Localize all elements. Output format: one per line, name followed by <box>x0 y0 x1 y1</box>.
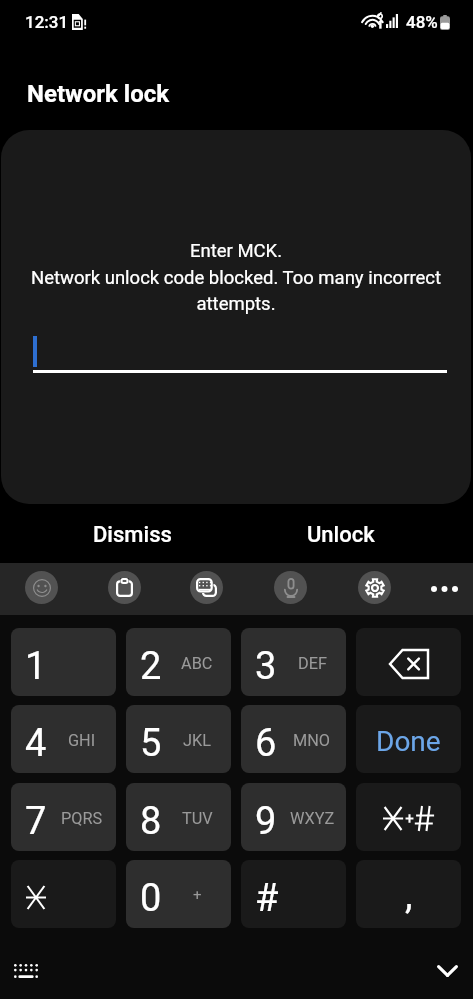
staticText: Enter MCK. Network unlock code blocked. … <box>9 240 463 314</box>
staticText: , <box>405 873 413 918</box>
staticText: ABC <box>181 654 213 673</box>
button[interactable]: Symbols <box>356 783 461 851</box>
staticText: 7 <box>25 799 47 844</box>
staticText: 2 <box>140 644 162 689</box>
staticText: + <box>193 886 202 904</box>
staticText: 5 <box>140 721 162 766</box>
button[interactable]: Unlock <box>288 514 393 556</box>
staticText: # <box>255 876 279 921</box>
button[interactable]: Hide keyboard <box>427 951 467 991</box>
staticText: Network lock <box>27 80 170 108</box>
staticText: JKL <box>183 731 211 750</box>
staticText: Unlock <box>307 522 375 548</box>
staticText: DEF <box>298 654 327 673</box>
button[interactable]: Emoji <box>25 571 58 604</box>
staticText: 8 <box>140 799 162 844</box>
staticText: TUV <box>182 809 213 828</box>
staticText: Done <box>376 725 441 758</box>
button[interactable]: More options <box>427 571 462 606</box>
button[interactable]: 2 <box>126 628 231 696</box>
staticText: 12:31 <box>25 12 69 32</box>
button[interactable]: 7 <box>11 783 116 851</box>
staticText: 4 <box>25 721 47 766</box>
button[interactable]: Dismiss <box>80 514 185 556</box>
staticText: 9 <box>255 799 277 844</box>
button[interactable]: Done <box>356 705 461 773</box>
button[interactable]: 8 <box>126 783 231 851</box>
button[interactable]: Clipboard <box>108 571 141 604</box>
staticText: 48% <box>406 12 438 32</box>
button[interactable]: 1 <box>11 628 116 696</box>
button[interactable]: , <box>356 860 461 928</box>
button[interactable]: 9 <box>241 783 346 851</box>
button[interactable]: 6 <box>241 705 346 773</box>
staticText: 1 <box>25 644 47 689</box>
button[interactable]: 0 <box>126 860 231 928</box>
button[interactable]: 4 <box>11 705 116 773</box>
staticText: Dismiss <box>93 522 172 548</box>
staticText: PQRS <box>61 809 103 828</box>
button[interactable]: Settings <box>358 571 391 604</box>
button[interactable]: Keyboard modes <box>190 571 223 604</box>
button[interactable]: Voice input <box>274 571 307 604</box>
staticText: MNO <box>293 731 331 750</box>
button[interactable]: 5 <box>126 705 231 773</box>
button[interactable]: Change keyboard <box>6 951 46 991</box>
staticText: 6 <box>255 721 277 766</box>
staticText: 0 <box>140 876 162 921</box>
staticText: GHI <box>68 731 96 750</box>
staticText: WXYZ <box>290 809 335 828</box>
button[interactable]: # <box>241 860 346 928</box>
button[interactable]: Star key <box>11 860 116 928</box>
staticText: 3 <box>255 644 277 689</box>
button[interactable]: 3 <box>241 628 346 696</box>
button[interactable]: Backspace <box>356 628 461 696</box>
